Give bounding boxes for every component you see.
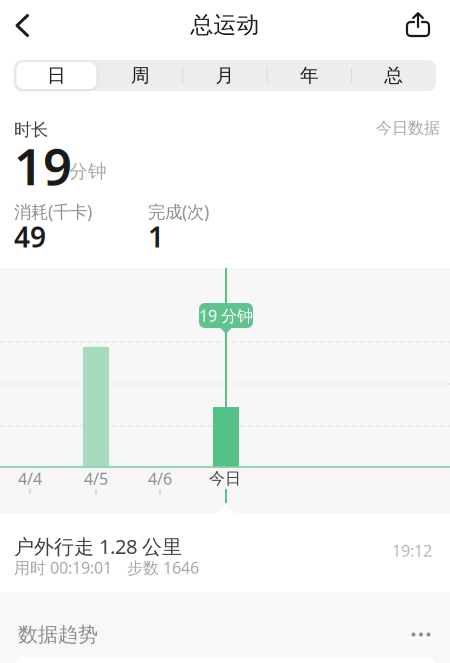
staticText: 分钟 [69, 160, 107, 183]
staticText: 周 [131, 64, 150, 87]
staticText: 总运动 [190, 11, 259, 39]
staticText: 4/4 [18, 468, 42, 489]
button[interactable]: 总 [352, 60, 436, 91]
button[interactable]: More [406, 624, 436, 644]
staticText: 总 [384, 64, 403, 87]
staticText: 19:12 [392, 540, 432, 561]
button[interactable]: 户外行走 1.28 公里 [0, 513, 450, 592]
staticText: 步数 1646 [127, 557, 199, 578]
staticText: 用时 00:19:01 [14, 557, 112, 578]
staticText: 4/5 [84, 468, 108, 489]
staticText: 时长 [14, 119, 48, 140]
staticText: 今日数据 [376, 118, 440, 138]
button[interactable]: 年 [267, 60, 352, 91]
staticText: 户外行走 1.28 公里 [14, 533, 182, 560]
staticText: 月 [215, 64, 234, 87]
staticText: 数据趋势 [18, 622, 98, 647]
staticText: 完成(次) [148, 200, 209, 223]
button[interactable]: 周 [98, 60, 183, 91]
staticText: 1 [148, 218, 164, 255]
staticText: 19 [14, 132, 72, 199]
staticText: 年 [300, 64, 319, 87]
staticText: 4/6 [148, 468, 172, 489]
button[interactable]: Share [396, 0, 440, 50]
staticText: 消耗(千卡) [14, 200, 92, 223]
staticText: 19 分钟 [199, 305, 253, 326]
button[interactable]: 月 [183, 60, 267, 91]
staticText: 日 [47, 64, 66, 87]
staticText: 今日 [209, 469, 241, 488]
staticText: 49 [14, 218, 46, 255]
button[interactable]: 日 [16, 62, 96, 89]
button[interactable]: Back [0, 0, 44, 50]
